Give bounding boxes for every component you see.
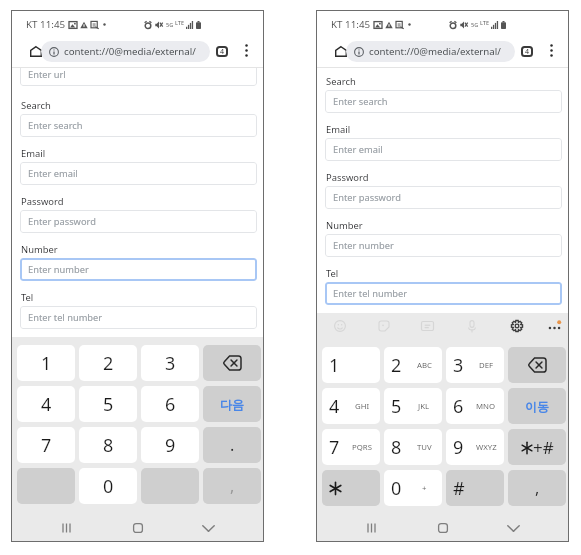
button[interactable]: Emoji — [330, 316, 350, 336]
staticText: 4 — [220, 47, 225, 57]
button[interactable] — [508, 347, 566, 383]
button[interactable]: 6 — [141, 386, 199, 422]
button[interactable]: Recents — [357, 514, 385, 542]
staticText: 0 — [391, 476, 402, 501]
staticText: JKL — [418, 401, 430, 412]
button[interactable]: , — [508, 470, 566, 506]
button[interactable]: Enter number — [20, 258, 257, 281]
button[interactable]: 이동 — [508, 388, 566, 424]
button[interactable]: More — [544, 316, 564, 336]
button[interactable]: Home — [124, 514, 152, 542]
staticText: ABC — [417, 360, 432, 371]
button[interactable]: 다음 — [203, 386, 261, 422]
staticText: 4 — [525, 47, 530, 57]
button[interactable]: Enter search — [20, 114, 257, 137]
button[interactable]: Voice input — [462, 316, 482, 336]
staticText: TUV — [417, 442, 432, 453]
staticText: Enter tel number — [333, 287, 408, 300]
button[interactable]: 7 — [322, 429, 380, 465]
button[interactable]: 5 — [79, 386, 137, 422]
button[interactable]: 2 — [79, 345, 137, 381]
button[interactable]: Keyboard settings — [507, 316, 527, 336]
staticText: GHI — [355, 401, 370, 412]
staticText: 6 — [165, 392, 176, 417]
staticText: Tel — [326, 267, 339, 280]
button[interactable]: Enter email — [20, 162, 257, 185]
button[interactable]: Enter search — [325, 90, 562, 113]
button[interactable]: Enter tel number — [20, 306, 257, 329]
staticText: Enter search — [333, 95, 388, 108]
button[interactable]: 9 — [141, 427, 199, 463]
staticText: Enter tel number — [28, 311, 103, 324]
button[interactable]: 1 — [322, 347, 380, 383]
staticText: 5 — [103, 392, 114, 417]
staticText: Tel — [21, 291, 34, 304]
staticText: content://0@media/external/ — [369, 45, 501, 58]
button[interactable]: 2 — [384, 347, 442, 383]
staticText: 3 — [453, 353, 464, 378]
staticText: 6 — [453, 394, 464, 419]
staticText: 이동 — [525, 399, 549, 414]
staticText: 1 — [329, 353, 340, 378]
button[interactable] — [322, 470, 380, 506]
staticText: KT 11:45 — [331, 18, 371, 31]
button[interactable]: . — [203, 427, 261, 463]
button[interactable]: 4 — [322, 388, 380, 424]
staticText: 3 — [165, 351, 176, 376]
staticText: . — [230, 434, 235, 456]
button[interactable]: content://0@media/external/ — [41, 41, 210, 62]
button[interactable]: 1 — [17, 345, 75, 381]
button[interactable]: # — [446, 470, 504, 506]
staticText: DEF — [479, 360, 494, 371]
button[interactable]: , — [203, 468, 261, 504]
staticText: Enter url — [28, 68, 66, 81]
button[interactable]: 9 — [446, 429, 504, 465]
button[interactable]: Enter tel number — [325, 282, 562, 305]
button[interactable]: content://0@media/external/ — [346, 41, 515, 62]
button[interactable]: Recents — [52, 514, 80, 542]
button[interactable]: 8 — [384, 429, 442, 465]
button[interactable]: Enter password — [20, 210, 257, 233]
button[interactable]: Enter password — [325, 186, 562, 209]
button[interactable]: Enter url — [20, 63, 257, 86]
staticText: + — [422, 483, 427, 494]
button[interactable]: 3 — [141, 345, 199, 381]
staticText: PQRS — [352, 442, 372, 453]
staticText: 8 — [391, 435, 402, 460]
button[interactable]: Hide keyboard — [499, 514, 527, 542]
button[interactable]: Home — [429, 514, 457, 542]
button[interactable]: 4 — [17, 386, 75, 422]
button[interactable]: 0 — [79, 468, 137, 504]
button[interactable]: +# — [508, 429, 566, 465]
button[interactable]: Home — [25, 40, 47, 62]
staticText: # — [453, 476, 465, 501]
staticText: +# — [533, 436, 554, 459]
button[interactable] — [203, 345, 261, 381]
staticText: , — [535, 477, 540, 499]
staticText: 8 — [103, 433, 114, 458]
button[interactable]: Tabs — [211, 40, 233, 62]
staticText: 7 — [41, 433, 52, 458]
button[interactable]: 0 — [384, 470, 442, 506]
button[interactable]: Hide keyboard — [194, 514, 222, 542]
button[interactable]: GIF — [417, 316, 437, 336]
button[interactable]: Tabs — [516, 40, 538, 62]
button[interactable]: Enter email — [325, 138, 562, 161]
staticText: Enter email — [333, 143, 383, 156]
staticText: Enter password — [333, 191, 401, 204]
button[interactable]: 8 — [79, 427, 137, 463]
button[interactable]: 7 — [17, 427, 75, 463]
staticText: 7 — [329, 435, 340, 460]
button[interactable]: More options — [239, 43, 254, 58]
button[interactable]: Home — [330, 40, 352, 62]
button[interactable]: 6 — [446, 388, 504, 424]
button[interactable]: 3 — [446, 347, 504, 383]
button[interactable]: Stickers — [374, 316, 394, 336]
button[interactable]: More options — [544, 43, 559, 58]
staticText: 9 — [165, 433, 176, 458]
button[interactable]: Enter number — [325, 234, 562, 257]
button[interactable]: 5 — [384, 388, 442, 424]
staticText: 5G — [471, 21, 479, 28]
